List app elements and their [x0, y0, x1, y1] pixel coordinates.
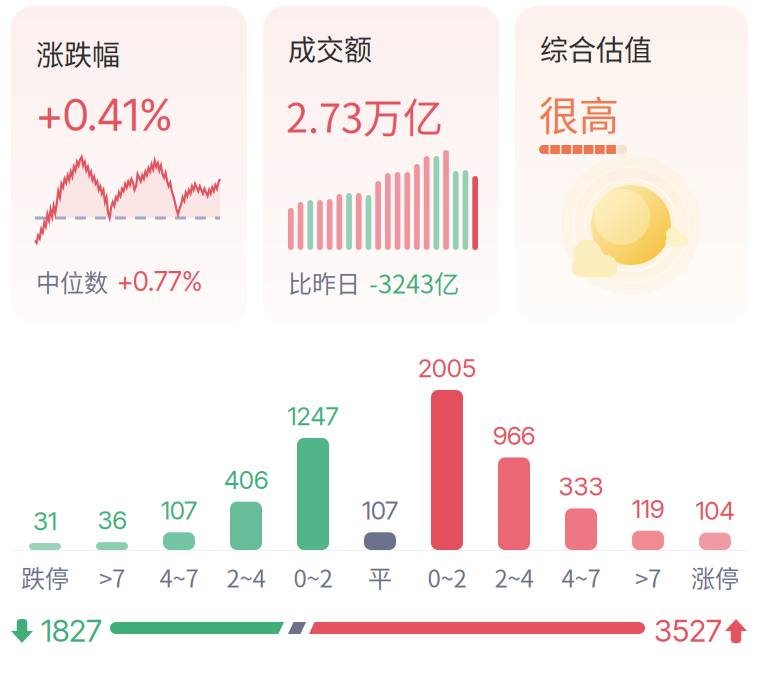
staticText: 107	[362, 495, 398, 526]
staticText: 2~4	[226, 560, 265, 594]
staticText: 涨停	[691, 560, 739, 594]
staticText: >7	[635, 560, 661, 594]
staticText: 跌停	[21, 560, 69, 594]
staticText: 综合估值	[540, 28, 652, 68]
staticText: 1247	[287, 401, 338, 431]
button[interactable]: 涨跌幅	[11, 6, 247, 324]
staticText: 104	[695, 495, 734, 526]
staticText: 2~4	[494, 560, 533, 594]
staticText: 0~2	[427, 560, 466, 594]
staticText: 中位数	[36, 264, 108, 299]
staticText: 4~7	[159, 560, 198, 594]
staticText: 3527	[654, 612, 722, 649]
staticText: 比昨日	[288, 265, 360, 300]
staticText: 0~2	[293, 560, 332, 594]
staticText: 涨跌幅	[36, 33, 120, 73]
staticText: >7	[99, 560, 125, 594]
staticText: 333	[558, 471, 603, 502]
staticText: 4~7	[561, 560, 600, 594]
staticText: +0.77%	[117, 265, 202, 297]
staticText: 406	[224, 464, 268, 495]
staticText: 107	[161, 495, 197, 526]
staticText: +0.41%	[36, 88, 173, 141]
staticText: 很高	[539, 84, 619, 142]
staticText: 成交额	[288, 28, 372, 68]
button[interactable]: 成交额	[263, 6, 499, 324]
staticText: 2.73万亿	[286, 86, 443, 144]
staticText: 平	[368, 560, 392, 594]
staticText: 119	[632, 493, 664, 524]
staticText: 2005	[418, 353, 476, 383]
staticText: 31	[33, 506, 57, 536]
staticText: -3243亿	[369, 264, 459, 301]
button[interactable]: 综合估值	[515, 6, 748, 324]
staticText: 36	[97, 505, 126, 535]
staticText: 1827	[41, 612, 102, 649]
staticText: 966	[493, 420, 535, 451]
